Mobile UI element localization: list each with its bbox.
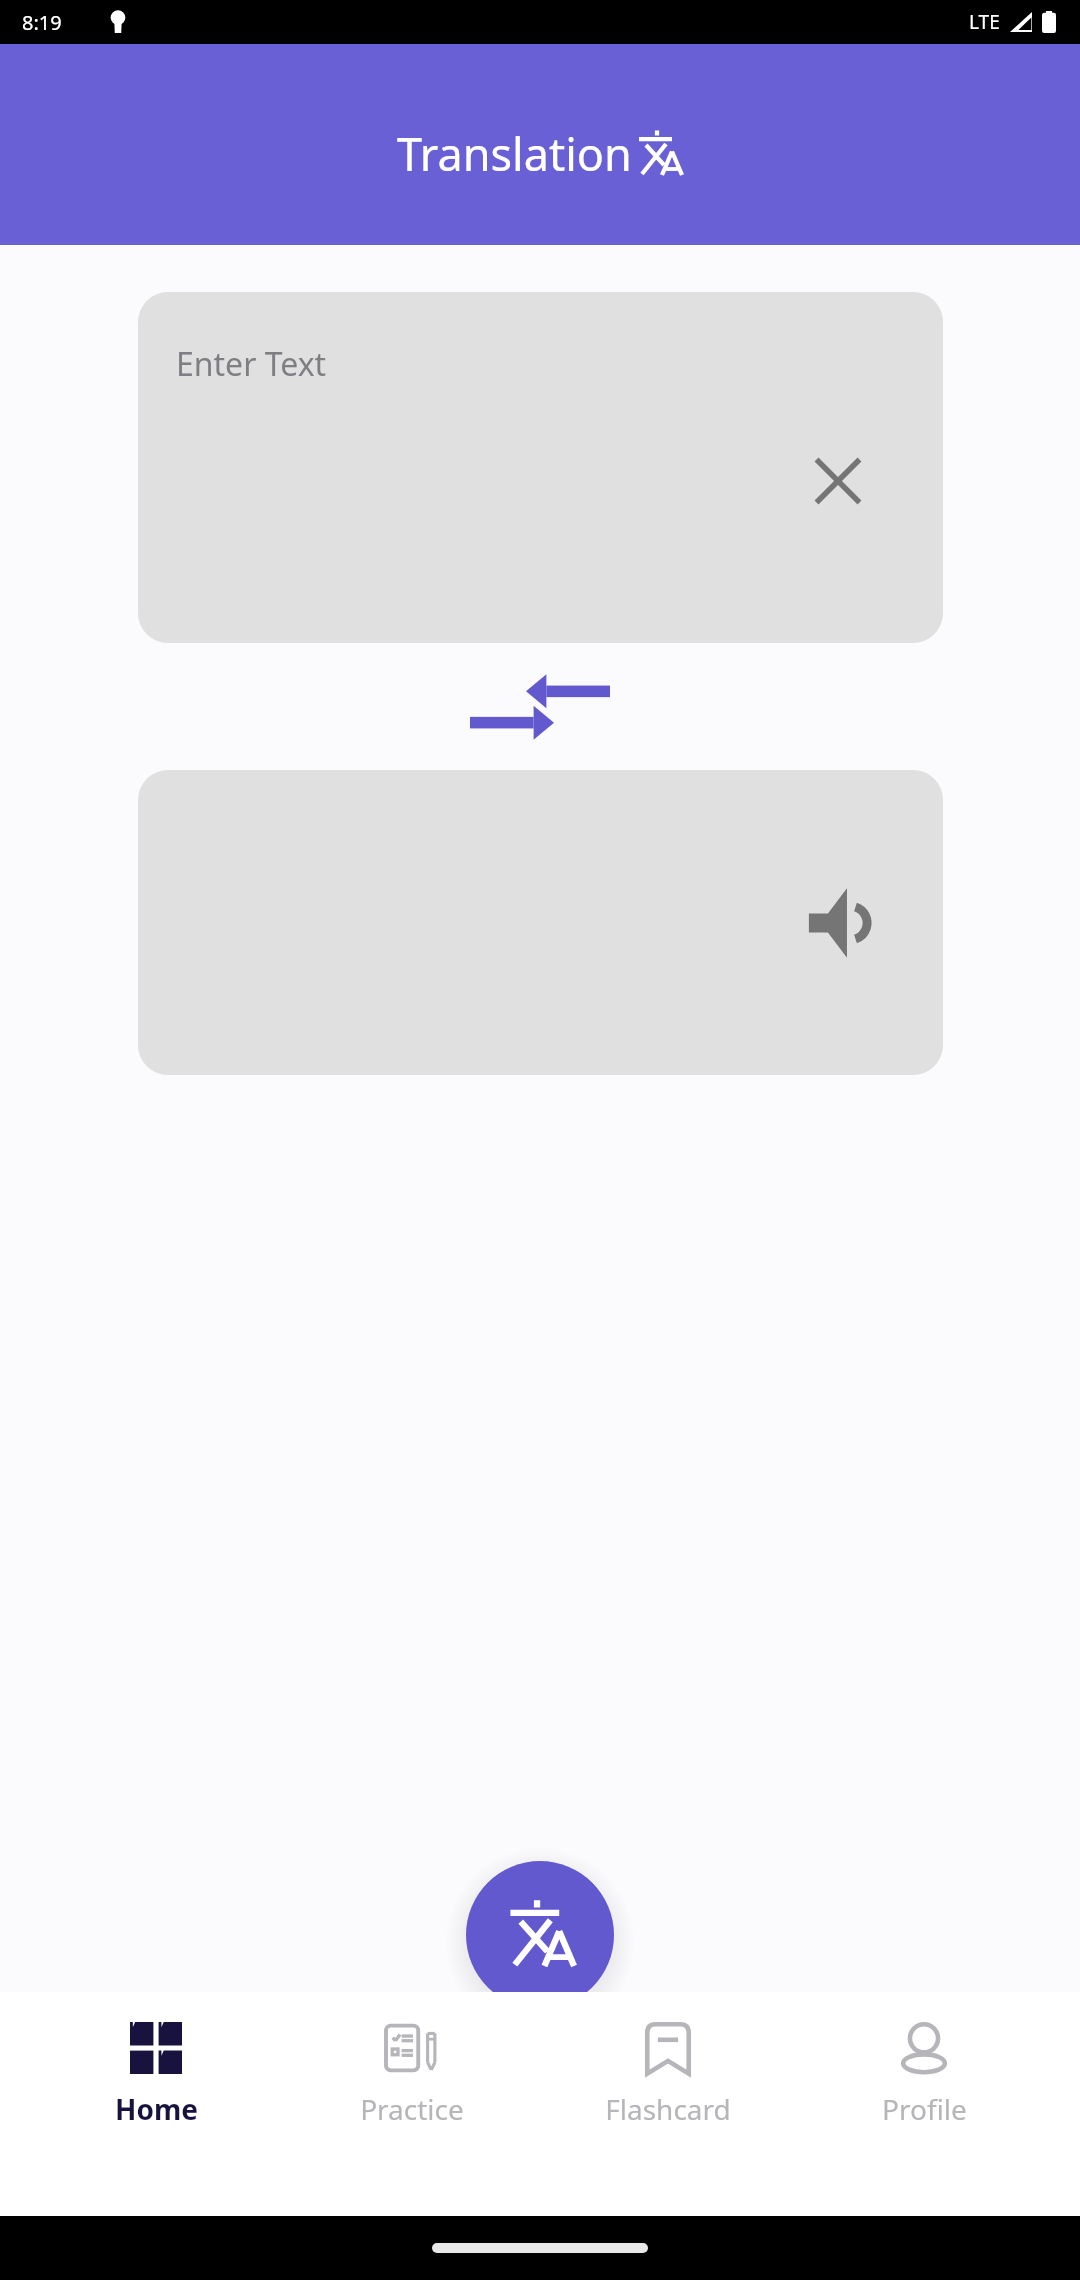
button[interactable]: Swap languages (466, 666, 614, 748)
staticText: Practice (360, 2090, 464, 2128)
staticText: LTE (969, 9, 1000, 35)
staticText: Enter Text (176, 342, 327, 386)
button[interactable]: Profile (824, 2022, 1024, 2128)
button[interactable]: Home (56, 2022, 256, 2128)
staticText: Home (115, 2090, 198, 2128)
button[interactable]: Flashcard (568, 2022, 768, 2128)
button[interactable]: Play translation (138, 770, 943, 1075)
staticText: Profile (882, 2090, 967, 2128)
staticText: Flashcard (605, 2090, 731, 2128)
button[interactable]: Play translation (799, 884, 877, 962)
button[interactable]: Translate (466, 1861, 614, 2009)
button[interactable]: Practice (312, 2022, 512, 2128)
button[interactable]: Clear text (799, 442, 877, 520)
staticText: Translation (397, 123, 632, 184)
staticText: 8:19 (22, 9, 62, 36)
button[interactable]: Enter Text (138, 292, 943, 643)
